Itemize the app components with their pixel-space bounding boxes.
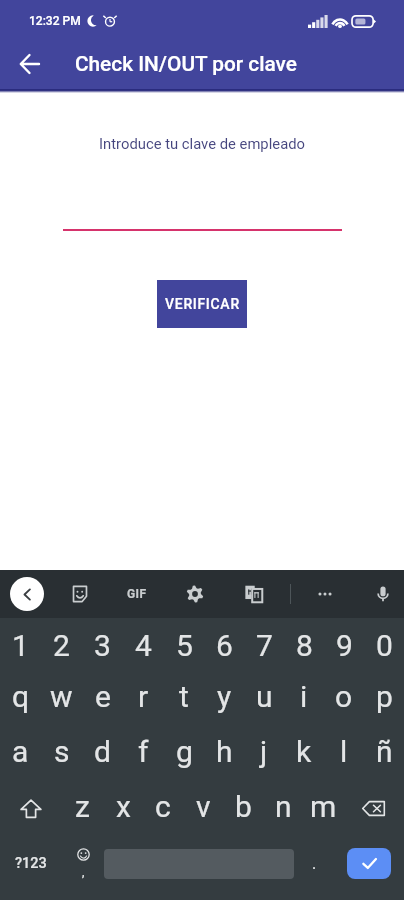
staticText: GIF bbox=[127, 587, 147, 601]
button[interactable]: c bbox=[143, 781, 183, 836]
button[interactable]: e bbox=[82, 672, 123, 726]
button[interactable]: t bbox=[164, 672, 204, 726]
staticText: k bbox=[296, 734, 312, 769]
staticText: Introduce tu clave de empleado bbox=[0, 135, 404, 152]
staticText: a bbox=[12, 734, 29, 769]
staticText: n bbox=[275, 789, 292, 824]
button[interactable]: Back bbox=[9, 44, 49, 84]
button[interactable]: More options bbox=[308, 577, 342, 611]
button[interactable]: u bbox=[244, 672, 284, 726]
button[interactable]: Settings bbox=[178, 577, 212, 611]
button[interactable]: b bbox=[223, 781, 263, 836]
button[interactable]: VERIFICAR bbox=[157, 280, 247, 328]
staticText: 5 bbox=[176, 628, 193, 663]
staticText: o bbox=[335, 679, 353, 714]
staticText: j bbox=[260, 734, 268, 769]
button[interactable]: Backspace bbox=[343, 781, 404, 836]
staticText: l bbox=[340, 734, 348, 769]
staticText: i bbox=[300, 679, 308, 714]
button[interactable]: Emoji bbox=[62, 836, 104, 891]
button[interactable]: g bbox=[164, 726, 204, 781]
staticText: VERIFICAR bbox=[165, 296, 240, 312]
staticText: h bbox=[216, 734, 233, 769]
button[interactable]: q bbox=[0, 672, 41, 726]
button[interactable]: 8 bbox=[284, 618, 324, 672]
staticText: 2 bbox=[53, 628, 70, 663]
staticText: 3 bbox=[94, 628, 111, 663]
button[interactable]: ñ bbox=[364, 726, 404, 781]
staticText: u bbox=[256, 679, 273, 714]
button[interactable]: r bbox=[123, 672, 164, 726]
button[interactable]: h bbox=[204, 726, 244, 781]
button[interactable]: Voice input bbox=[366, 577, 400, 611]
staticText: f bbox=[138, 734, 149, 769]
staticText: r bbox=[138, 679, 149, 714]
staticText: 7 bbox=[256, 628, 273, 663]
button[interactable]: w bbox=[41, 672, 82, 726]
button[interactable]: 3 bbox=[82, 618, 123, 672]
button[interactable]: v bbox=[183, 781, 223, 836]
button[interactable]: f bbox=[123, 726, 164, 781]
button[interactable]: 5 bbox=[164, 618, 204, 672]
staticText: 12:32 PM bbox=[29, 14, 81, 28]
button[interactable]: ?123 bbox=[0, 836, 62, 891]
button[interactable]: k bbox=[284, 726, 324, 781]
button[interactable]: z bbox=[62, 781, 103, 836]
button[interactable]: Space bbox=[104, 836, 294, 891]
staticText: m bbox=[310, 789, 337, 824]
staticText: 1 bbox=[12, 628, 29, 663]
button[interactable]: a bbox=[0, 726, 41, 781]
button[interactable]: . bbox=[294, 836, 334, 891]
staticText: y bbox=[217, 679, 232, 714]
staticText: t bbox=[179, 679, 189, 714]
staticText: . bbox=[312, 854, 317, 873]
button[interactable]: Shift bbox=[0, 781, 62, 836]
button[interactable]: o bbox=[324, 672, 364, 726]
staticText: x bbox=[116, 789, 131, 824]
button[interactable]: 2 bbox=[41, 618, 82, 672]
button[interactable]: Close keyboard toolbar bbox=[10, 577, 44, 611]
staticText: ?123 bbox=[15, 855, 47, 872]
button[interactable]: 0 bbox=[364, 618, 404, 672]
staticText: 4 bbox=[135, 628, 152, 663]
button[interactable]: p bbox=[364, 672, 404, 726]
button[interactable]: j bbox=[244, 726, 284, 781]
staticText: , bbox=[82, 865, 85, 879]
staticText: b bbox=[235, 789, 252, 824]
staticText: g bbox=[176, 734, 193, 769]
button[interactable]: Enter bbox=[334, 836, 404, 891]
button[interactable]: y bbox=[204, 672, 244, 726]
staticText: 6 bbox=[216, 628, 233, 663]
staticText: 0 bbox=[376, 628, 393, 663]
button[interactable]: Stickers bbox=[63, 577, 97, 611]
button[interactable]: i bbox=[284, 672, 324, 726]
staticText: 9 bbox=[336, 628, 353, 663]
button[interactable]: d bbox=[82, 726, 123, 781]
button[interactable]: 6 bbox=[204, 618, 244, 672]
staticText: p bbox=[376, 679, 393, 714]
staticText: s bbox=[54, 734, 70, 769]
button[interactable]: x bbox=[103, 781, 143, 836]
staticText: w bbox=[50, 679, 73, 714]
staticText: ñ bbox=[376, 734, 393, 769]
button[interactable]: l bbox=[324, 726, 364, 781]
button[interactable]: s bbox=[41, 726, 82, 781]
staticText: c bbox=[155, 789, 171, 824]
button[interactable]: 7 bbox=[244, 618, 284, 672]
button[interactable]: m bbox=[303, 781, 343, 836]
staticText: q bbox=[12, 679, 30, 714]
button[interactable]: 4 bbox=[123, 618, 164, 672]
button[interactable]: 9 bbox=[324, 618, 364, 672]
staticText: v bbox=[196, 789, 211, 824]
staticText: d bbox=[94, 734, 111, 769]
staticText: Check IN/OUT por clave bbox=[75, 52, 297, 76]
button[interactable]: GIF bbox=[119, 577, 155, 611]
staticText: 8 bbox=[296, 628, 313, 663]
button[interactable]: n bbox=[263, 781, 303, 836]
staticText: z bbox=[75, 789, 90, 824]
button[interactable]: Translate bbox=[237, 577, 271, 611]
staticText: e bbox=[95, 679, 111, 714]
button[interactable]: 1 bbox=[0, 618, 41, 672]
